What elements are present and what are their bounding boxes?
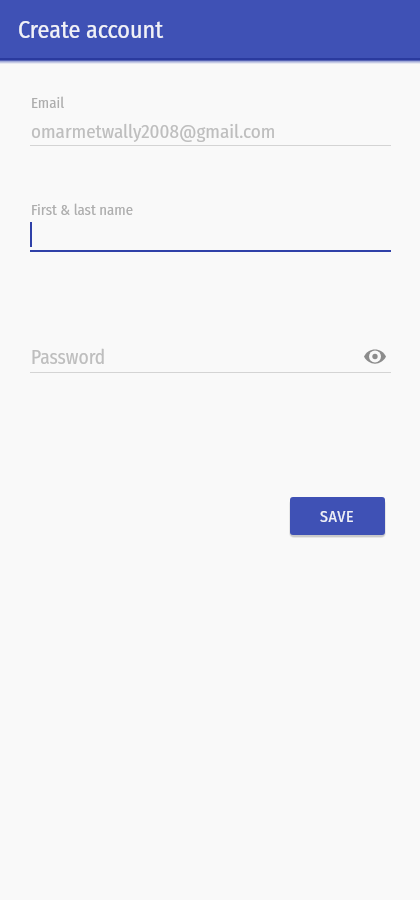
button[interactable]: Email bbox=[30, 90, 391, 146]
button[interactable]: First & last name bbox=[30, 196, 391, 252]
button[interactable]: SAVE bbox=[290, 497, 385, 535]
button[interactable]: Show password bbox=[356, 342, 394, 370]
staticText: First & last name bbox=[31, 201, 133, 219]
staticText: omarmetwally2008@gmail.com bbox=[31, 120, 276, 143]
staticText: Create account bbox=[18, 16, 163, 45]
staticText: Email bbox=[31, 94, 65, 112]
staticText: SAVE bbox=[320, 507, 355, 526]
button[interactable]: Password bbox=[30, 340, 350, 373]
staticText: Password bbox=[31, 346, 106, 369]
